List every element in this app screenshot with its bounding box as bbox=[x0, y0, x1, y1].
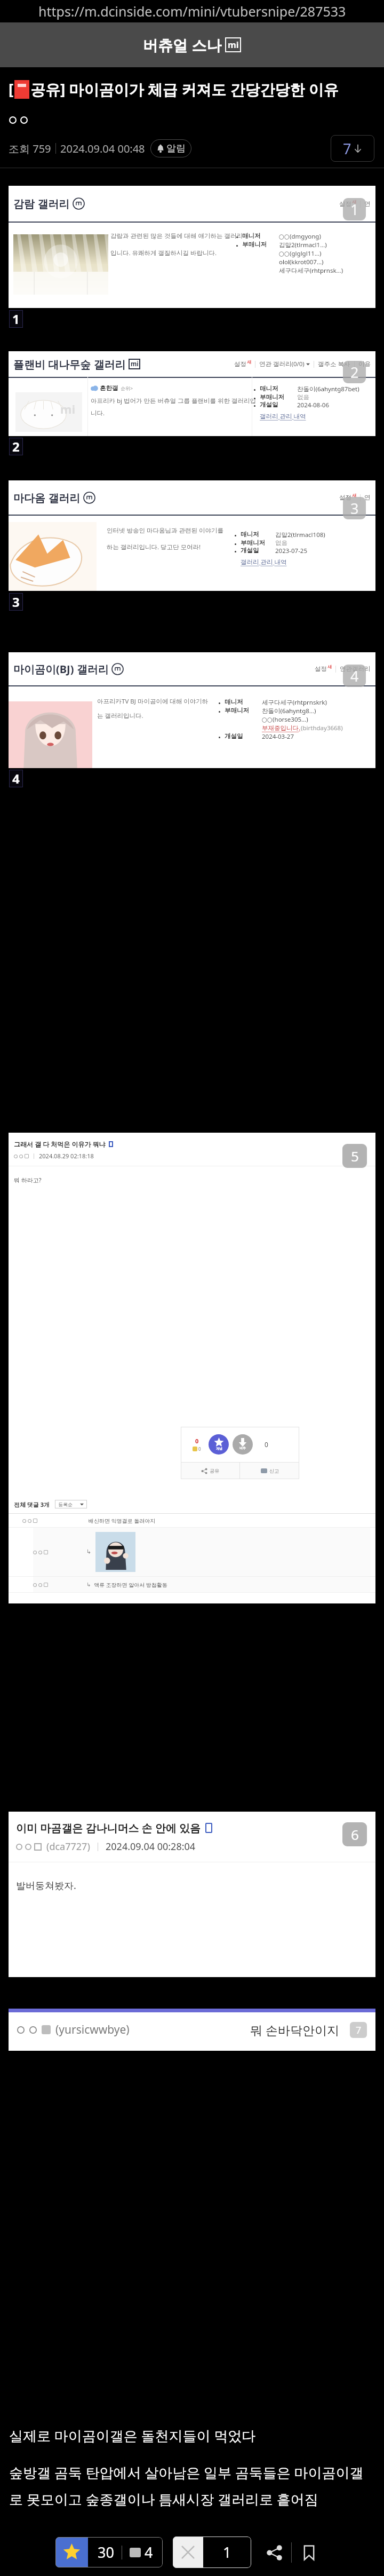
staticText: ○○(glglgl11…) bbox=[279, 249, 322, 258]
staticText: 이미 마곰갤은 감나니머스 손 안에 있음 bbox=[16, 1821, 201, 1835]
staticText: 매니저 bbox=[242, 232, 270, 240]
staticText: 세구다세구(rhtprnsk…) bbox=[279, 266, 343, 275]
button[interactable]: 공유 bbox=[181, 1463, 239, 1479]
button[interactable]: 7 bbox=[331, 135, 374, 162]
staticText: 7 bbox=[343, 139, 351, 159]
button[interactable]: 개념 bbox=[209, 1434, 229, 1455]
staticText: (dca7727) bbox=[46, 1840, 90, 1853]
staticText: 2024.09.04 00:28:04 bbox=[106, 1840, 196, 1853]
staticText: 전체 댓글 3개 bbox=[14, 1500, 50, 1508]
staticText: 4 bbox=[145, 2542, 153, 2562]
staticText: 아프리카 bj 법어가 만든 버츄얼 그룹 플랜비를 위한 갤러리입니다. bbox=[91, 397, 256, 417]
staticText: 7 bbox=[356, 2024, 362, 2037]
staticText: 개념 bbox=[216, 1447, 222, 1451]
button[interactable]: 설정 bbox=[339, 494, 356, 501]
button[interactable]: 설정 bbox=[234, 360, 251, 368]
staticText: 2024-08-06 bbox=[297, 401, 330, 409]
staticText: 발버둥쳐봤자. bbox=[16, 1879, 76, 1892]
staticText: mi bbox=[228, 39, 239, 51]
staticText: 버츄얼 스나 bbox=[143, 35, 222, 55]
button[interactable]: Bookmark bbox=[297, 2540, 321, 2565]
staticText: 흔한갤 bbox=[100, 384, 118, 392]
staticText: 순위> bbox=[121, 385, 133, 391]
button[interactable]: 마이곰이(BJ) 갤러리 bbox=[9, 652, 375, 768]
button[interactable]: 마다옴 갤러리 bbox=[9, 480, 375, 591]
button[interactable]: 설정 bbox=[315, 665, 332, 673]
button[interactable]: 연관갤러리 bbox=[340, 665, 371, 673]
staticText: 인터넷 방송인 마다옴님과 관련된 이야기를 하는 갤러리입니다. 당고단 모여… bbox=[107, 526, 228, 551]
button[interactable]: 이용 bbox=[358, 360, 371, 368]
staticText: 이용 bbox=[358, 360, 371, 368]
staticText: (birthday3668) bbox=[301, 724, 343, 732]
staticText: ○○(dmgyong) bbox=[279, 232, 321, 241]
staticText: 2024.09.04 00:48 bbox=[60, 141, 145, 156]
staticText: 1 bbox=[223, 2542, 231, 2562]
button[interactable]: 버츄얼 스나 bbox=[143, 35, 241, 55]
staticText: 2 bbox=[350, 362, 359, 382]
staticText: 마이곰이(BJ) 갤러리 bbox=[13, 662, 109, 676]
button[interactable]: 30 bbox=[55, 2537, 163, 2567]
staticText: 설정 bbox=[315, 665, 327, 673]
button[interactable]: ↳ bbox=[33, 1577, 370, 1592]
button[interactable]: 설정 bbox=[339, 200, 356, 208]
staticText: 그래서 갤 다 처먹은 이유가 뭐냐 bbox=[14, 1140, 106, 1148]
staticText: 부매니저 bbox=[225, 707, 258, 714]
staticText: 설정 bbox=[234, 360, 246, 368]
staticText: 공유] 마이곰이가 체급 커져도 간당간당한 이유 bbox=[30, 79, 339, 99]
staticText: 설정 bbox=[339, 494, 351, 501]
staticText: 부매니저 bbox=[260, 393, 290, 401]
staticText: 숲방갤 곰둑 탄압에서 살아남은 일부 곰둑들은 마이곰이갤로 못모이고 숲종갤… bbox=[9, 2463, 377, 2509]
staticText: 0 bbox=[198, 1446, 201, 1452]
staticText: 부재중입니다. bbox=[262, 724, 301, 732]
button[interactable]: 비추 bbox=[233, 1434, 253, 1455]
staticText: 공유 bbox=[210, 1468, 219, 1474]
button[interactable]: 등록순 bbox=[55, 1500, 87, 1508]
staticText: 개설일 bbox=[241, 547, 271, 554]
button[interactable]: 연관 갤러리(0/0) bbox=[259, 360, 310, 368]
staticText: 0 bbox=[265, 1440, 268, 1449]
staticText: 개설일 bbox=[225, 732, 258, 740]
staticText: 6 bbox=[351, 1825, 359, 1844]
staticText: 비추 bbox=[239, 1446, 246, 1450]
button[interactable]: 연 bbox=[364, 200, 371, 208]
button[interactable]: 갤러리 관리 내역 bbox=[260, 412, 306, 421]
button[interactable]: 배신하면 익명결로 돌려야지 bbox=[22, 1514, 370, 1527]
staticText: 1 bbox=[350, 200, 359, 219]
staticText: 연관갤러리 bbox=[340, 665, 371, 673]
staticText: https://m.dcinside.com/mini/vtubersnipe/… bbox=[38, 2, 346, 20]
button[interactable]: 플랜비 대나무숲 갤러리 bbox=[9, 351, 375, 436]
staticText: 2 bbox=[12, 438, 20, 455]
staticText: 5 bbox=[351, 1147, 359, 1165]
button[interactable]: 감람 갤러리 bbox=[9, 186, 375, 308]
staticText: ↳ bbox=[86, 1548, 92, 1555]
staticText: 설정 bbox=[339, 200, 351, 208]
staticText: 매니저 bbox=[260, 385, 290, 392]
staticText: 갤러리 관리 내역 bbox=[260, 412, 306, 421]
button[interactable]: 알림 bbox=[150, 139, 191, 157]
button[interactable]: 1 bbox=[173, 2537, 251, 2568]
staticText: ↳ bbox=[86, 1582, 91, 1588]
staticText: 신고 bbox=[269, 1468, 279, 1474]
staticText: 3 bbox=[12, 593, 20, 611]
staticText: 감람 갤러리 bbox=[13, 196, 70, 211]
staticText: olol(kkrot007…) bbox=[279, 258, 324, 266]
button[interactable]: 신고 bbox=[240, 1463, 299, 1479]
staticText: 플랜비 대나무숲 갤러리 bbox=[13, 357, 126, 372]
button[interactable]: 갤러리 관리 내역 bbox=[241, 558, 287, 566]
button[interactable]: ↳ bbox=[33, 1528, 370, 1576]
staticText: 1 bbox=[12, 310, 20, 328]
staticText: 매니저 bbox=[225, 698, 258, 706]
staticText: 알림 bbox=[166, 143, 186, 155]
button[interactable]: 갤주소 복사 bbox=[318, 360, 350, 368]
button[interactable]: Share bbox=[262, 2540, 286, 2565]
staticText: 4 bbox=[350, 666, 359, 686]
staticText: 매니저 bbox=[241, 531, 271, 538]
button[interactable]: 연 bbox=[364, 494, 371, 501]
staticText: 30 bbox=[98, 2542, 114, 2562]
staticText: 세구다세구(rhtprnskrk) bbox=[262, 698, 327, 707]
staticText: (yursicwwbye) bbox=[55, 2022, 130, 2037]
staticText: 없음 bbox=[297, 393, 309, 401]
staticText: 갤러리 관리 내역 bbox=[241, 558, 287, 566]
staticText: 새 bbox=[327, 664, 332, 669]
staticText: 감람과 관련된 많은 것들에 대해 얘기하는 갤러리입니다. 유쾌하게 갤질하시… bbox=[110, 232, 243, 257]
